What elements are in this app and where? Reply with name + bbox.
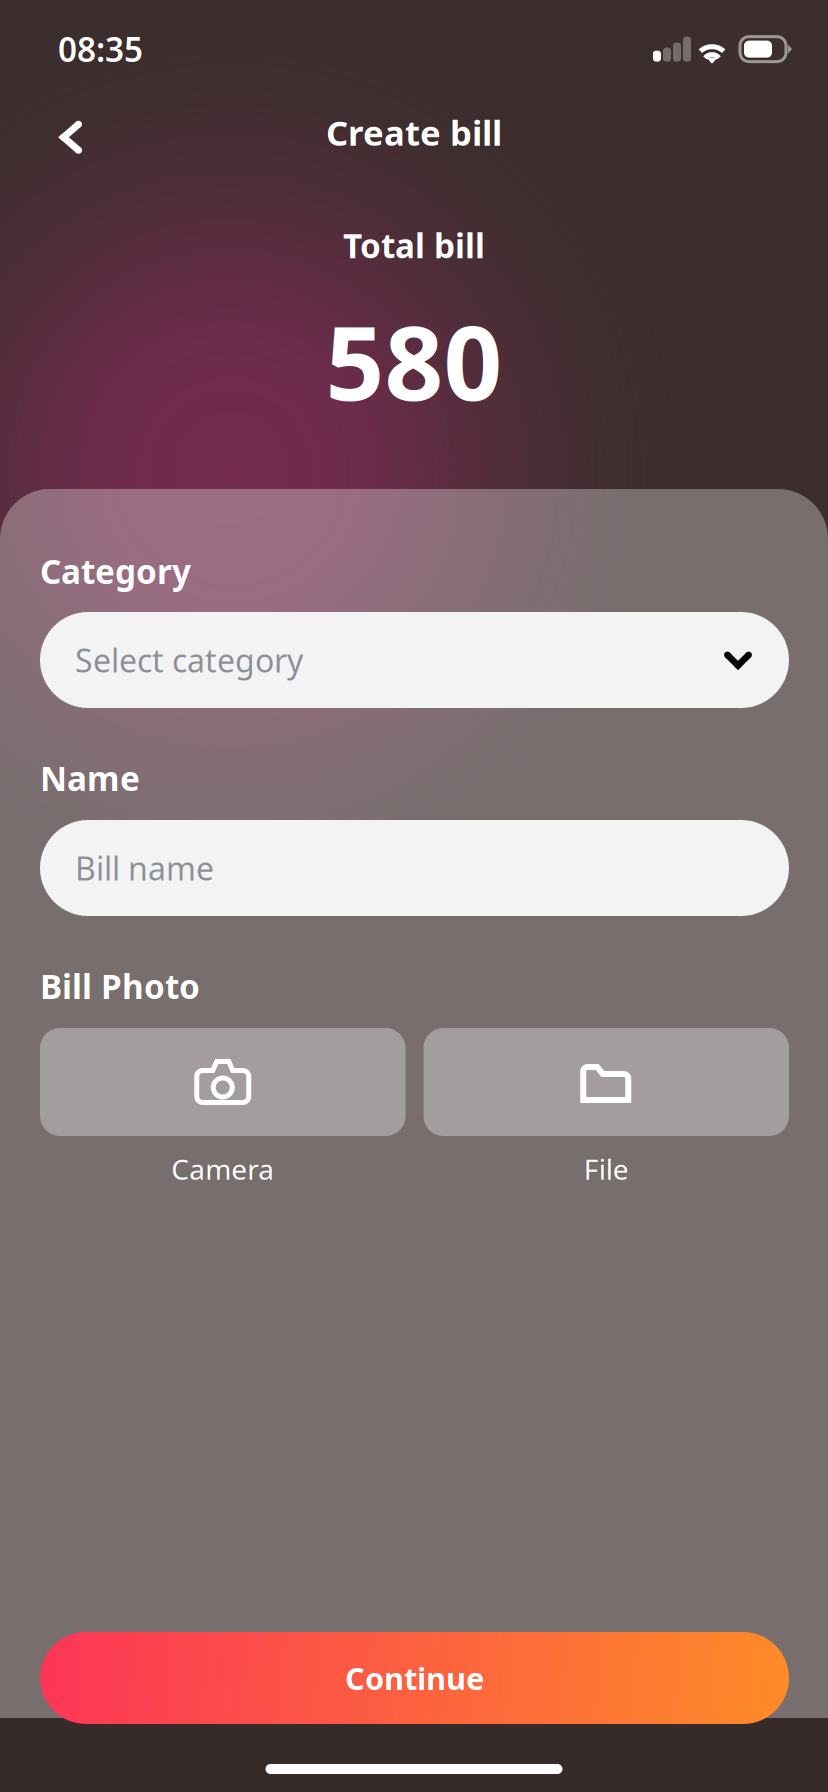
button[interactable]: Select category [40,612,789,708]
staticText: Category [40,549,191,593]
staticText: Bill name [75,847,214,889]
staticText: 580 [325,292,502,429]
button[interactable]: Back [40,101,102,163]
staticText: Create bill [326,109,502,155]
staticText: File [584,1150,629,1188]
staticText: Total bill [343,223,485,268]
button[interactable]: Continue [0,1632,828,1724]
button[interactable]: File [423,1028,789,1186]
staticText: Select category [75,639,303,681]
button[interactable]: Camera [40,1028,405,1186]
staticText: Continue [345,1658,484,1698]
staticText: Camera [171,1150,274,1188]
staticText: Name [40,756,140,800]
button[interactable]: Bill name [40,820,789,916]
staticText: Bill Photo [40,964,200,1008]
staticText: 08:35 [58,27,143,71]
